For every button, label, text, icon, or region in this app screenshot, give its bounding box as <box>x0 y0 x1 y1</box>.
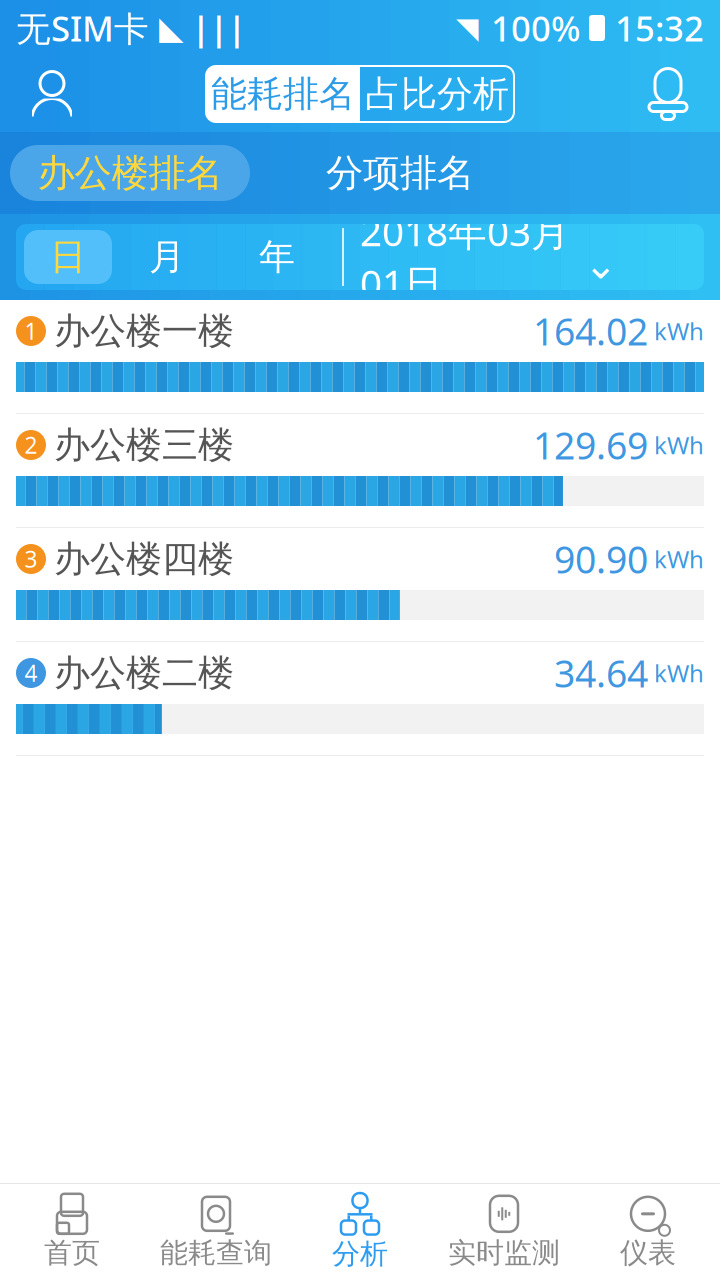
staticText: 日 <box>50 235 86 279</box>
button[interactable]: 能耗查询 <box>144 1184 288 1280</box>
staticText: 2018年03月01日 <box>360 206 570 308</box>
button[interactable]: 首页 <box>0 1184 144 1280</box>
button[interactable]: 办公楼排名 <box>10 145 250 201</box>
staticText: 90.90 <box>554 534 648 584</box>
staticText: kWh <box>654 543 704 575</box>
staticText: 办公楼三楼 <box>54 423 234 467</box>
staticText: kWh <box>654 429 704 461</box>
staticText: 月 <box>149 235 185 279</box>
staticText: 164.02 <box>533 306 648 356</box>
staticText: kWh <box>654 657 704 689</box>
button[interactable]: 通知 <box>628 58 708 130</box>
button[interactable]: 2018年03月01日 <box>344 224 634 290</box>
staticText: 首页 <box>44 1236 100 1270</box>
staticText: ||| <box>192 7 246 49</box>
button[interactable]: 年 <box>222 230 332 284</box>
button[interactable]: 仪表 <box>576 1184 720 1280</box>
staticText: 办公楼排名 <box>37 150 222 196</box>
staticText: 办公楼四楼 <box>54 537 234 581</box>
button[interactable]: 4 <box>0 642 720 756</box>
staticText: 无SIM卡 <box>16 5 149 51</box>
staticText: 占比分析 <box>365 72 509 116</box>
staticText: 4 <box>24 658 37 688</box>
staticText: 办公楼二楼 <box>54 651 234 695</box>
staticText: 能耗查询 <box>160 1236 272 1270</box>
button[interactable]: 实时监测 <box>432 1184 576 1280</box>
staticText: kWh <box>654 315 704 347</box>
staticText: 仪表 <box>620 1236 676 1270</box>
button[interactable]: 日 <box>24 230 112 284</box>
staticText: ◣ <box>159 10 184 46</box>
staticText: 分析 <box>332 1237 388 1271</box>
button[interactable]: 个人中心 <box>12 58 92 130</box>
staticText: 实时监测 <box>448 1236 560 1270</box>
staticText: 分项排名 <box>326 150 474 196</box>
staticText: 3 <box>24 544 37 574</box>
button[interactable]: 1 <box>0 300 720 414</box>
staticText: ◥ <box>456 11 479 45</box>
button[interactable]: 占比分析 <box>360 66 514 122</box>
button[interactable]: 3 <box>0 528 720 642</box>
staticText: 年 <box>259 235 295 279</box>
staticText: 15:32 <box>615 5 704 51</box>
staticText: 办公楼一楼 <box>54 309 234 353</box>
staticText: 1 <box>24 316 37 346</box>
staticText: 129.69 <box>533 420 648 470</box>
staticText: 能耗排名 <box>211 72 355 116</box>
button[interactable]: 分析 <box>288 1184 432 1280</box>
button[interactable]: 月 <box>112 230 222 284</box>
staticText: 100% <box>491 5 581 51</box>
staticText: 2 <box>24 430 37 460</box>
button[interactable]: 2 <box>0 414 720 528</box>
button[interactable]: 分项排名 <box>280 145 520 201</box>
button[interactable]: 能耗排名 <box>206 66 360 122</box>
staticText: 34.64 <box>554 648 648 698</box>
staticText: ⌄ <box>584 242 618 287</box>
